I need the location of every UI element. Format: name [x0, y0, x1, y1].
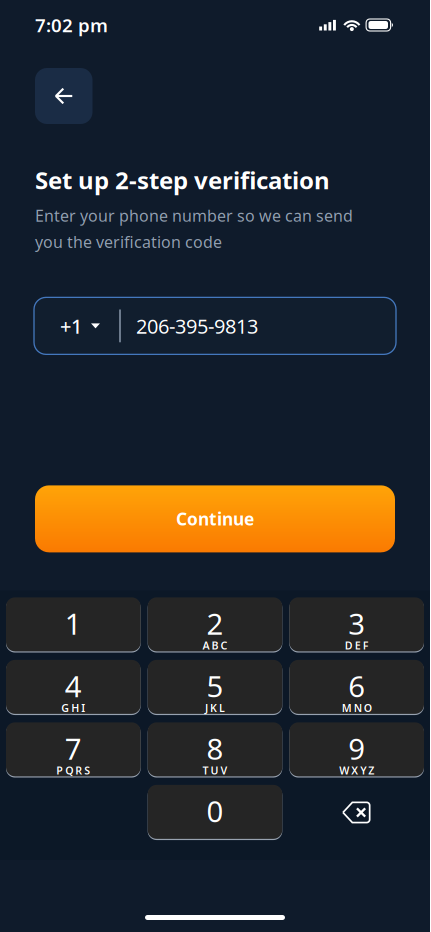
- staticText: P Q R S: [56, 763, 90, 777]
- staticText: J K L: [205, 701, 225, 715]
- staticText: +1: [60, 313, 82, 339]
- button[interactable]: 2: [148, 597, 282, 653]
- staticText: W X Y Z: [339, 763, 374, 777]
- staticText: 7:02 pm: [35, 13, 108, 37]
- staticText: 8: [206, 729, 223, 768]
- staticText: Set up 2-step verification: [35, 164, 330, 196]
- staticText: 206-395-9813: [136, 313, 258, 339]
- button[interactable]: 5: [148, 660, 282, 715]
- button[interactable]: +1: [34, 298, 119, 353]
- staticText: G H I: [61, 701, 85, 715]
- button[interactable]: 1: [6, 597, 141, 653]
- staticText: T U V: [202, 763, 227, 777]
- staticText: 7: [65, 729, 82, 768]
- button[interactable]: 8: [148, 722, 282, 778]
- staticText: D E F: [345, 638, 369, 652]
- staticText: 5: [206, 666, 223, 705]
- button[interactable]: Continue: [35, 485, 395, 552]
- button[interactable]: 6: [289, 660, 424, 715]
- staticText: 4: [65, 666, 82, 705]
- staticText: Continue: [176, 507, 254, 530]
- staticText: A B C: [202, 638, 227, 652]
- button[interactable]: 7: [6, 722, 141, 778]
- button[interactable]: 3: [289, 597, 424, 653]
- button[interactable]: 0: [148, 785, 282, 840]
- staticText: 0: [206, 791, 223, 830]
- staticText: 2: [206, 604, 223, 643]
- staticText: 3: [348, 604, 365, 643]
- button[interactable]: 4: [6, 660, 141, 715]
- staticText: Enter your phone number so we can send y…: [35, 205, 353, 252]
- staticText: 6: [348, 666, 365, 705]
- staticText: 9: [348, 729, 365, 768]
- staticText: 1: [65, 604, 82, 643]
- button[interactable]: 9: [289, 722, 424, 778]
- button[interactable]: Back: [35, 68, 92, 124]
- button[interactable]: Delete: [289, 785, 424, 840]
- staticText: M N O: [342, 701, 372, 715]
